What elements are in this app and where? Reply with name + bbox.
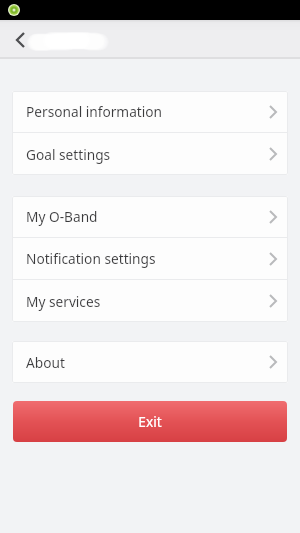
- staticText: Notification settings: [26, 249, 156, 268]
- staticText: Exit: [138, 412, 162, 431]
- button[interactable]: My services: [12, 280, 288, 322]
- button[interactable]: My O-Band: [12, 196, 288, 237]
- button[interactable]: Goal settings: [12, 133, 288, 175]
- staticText: About: [26, 353, 65, 372]
- button[interactable]: Exit: [13, 401, 287, 442]
- button[interactable]: Personal information: [12, 91, 288, 132]
- staticText: My services: [26, 292, 101, 311]
- button[interactable]: Back: [0, 23, 34, 57]
- staticText: Goal settings: [26, 145, 111, 164]
- button[interactable]: Notification settings: [12, 238, 288, 279]
- staticText: My O-Band: [26, 207, 98, 226]
- staticText: Personal information: [26, 102, 163, 121]
- button[interactable]: About: [12, 341, 288, 383]
